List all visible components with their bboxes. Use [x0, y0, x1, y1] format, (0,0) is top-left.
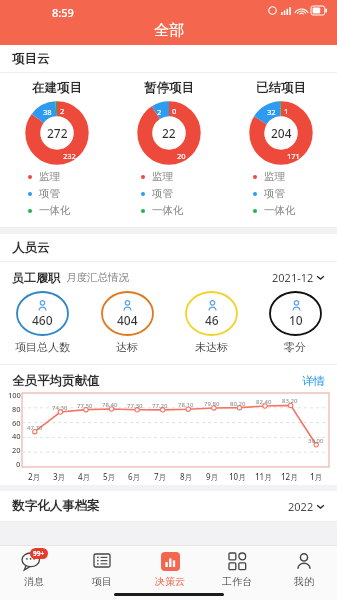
staticText: 20	[12, 445, 21, 455]
staticText: 10月	[229, 471, 247, 482]
button[interactable]: 数字化人事档案	[12, 491, 325, 521]
staticText: 项管	[39, 187, 60, 200]
button[interactable]: 46	[169, 291, 253, 354]
staticText: 40	[12, 431, 21, 441]
staticText: 项目	[92, 575, 112, 588]
staticText: 消息	[24, 575, 44, 588]
staticText: 171	[287, 151, 300, 161]
staticText: 项管	[152, 187, 173, 200]
staticText: 1	[284, 106, 289, 116]
staticText: 2021-12	[272, 270, 314, 285]
button[interactable]: 工作台	[203, 549, 270, 588]
staticText: 2022	[288, 499, 314, 514]
staticText: 38	[43, 107, 52, 117]
staticText: 零分	[284, 340, 306, 354]
button[interactable]: 我的	[270, 549, 337, 588]
staticText: 99+	[33, 549, 45, 558]
staticText: 77.30	[127, 402, 143, 410]
staticText: 46	[205, 312, 219, 328]
staticText: 项目云	[12, 51, 50, 67]
button[interactable]: 消息	[0, 549, 68, 588]
staticText: 4月	[78, 471, 91, 482]
staticText: 8月	[180, 471, 193, 482]
staticText: 0	[16, 459, 21, 469]
staticText: 未达标	[195, 340, 228, 354]
staticText: 60	[12, 418, 21, 428]
staticText: 2	[157, 107, 162, 117]
staticText: 47.70	[27, 424, 43, 432]
button[interactable]: 2021-12	[272, 270, 325, 285]
staticText: 10	[289, 312, 303, 328]
staticText: 全部	[154, 21, 184, 40]
staticText: 2	[60, 106, 65, 116]
staticText: 一体化	[39, 204, 71, 217]
staticText: 80	[12, 404, 21, 414]
staticText: 32	[267, 107, 276, 117]
staticText: 3月	[53, 471, 66, 482]
staticText: 74.30	[52, 404, 68, 412]
staticText: 达标	[116, 340, 138, 354]
staticText: 监理	[39, 170, 60, 183]
staticText: 5月	[103, 471, 116, 482]
staticText: 2月	[28, 471, 41, 482]
staticText: 监理	[264, 170, 285, 183]
staticText: 9月	[206, 471, 219, 482]
staticText: 78.10	[178, 401, 194, 409]
staticText: 204	[271, 125, 292, 141]
staticText: 决策云	[155, 575, 185, 588]
staticText: 79.80	[204, 400, 220, 408]
staticText: 77.50	[77, 402, 93, 410]
button[interactable]: 项目	[68, 549, 136, 588]
button[interactable]: 460	[0, 291, 85, 354]
button[interactable]: 10	[253, 291, 337, 354]
staticText: 78.40	[102, 401, 118, 409]
staticText: 6月	[128, 471, 141, 482]
staticText: 12月	[281, 471, 299, 482]
staticText: 8:59	[52, 5, 74, 20]
staticText: 人员云	[12, 240, 50, 256]
staticText: 83.20	[282, 397, 298, 405]
staticText: 1月	[310, 471, 323, 482]
staticText: 月度汇总情况	[66, 271, 129, 284]
button[interactable]: 决策云	[136, 549, 203, 588]
staticText: 232	[63, 151, 76, 161]
staticText: 项目总人数	[15, 340, 70, 354]
staticText: 在建项目	[32, 80, 82, 96]
staticText: 一体化	[264, 204, 296, 217]
staticText: 工作台	[222, 575, 252, 588]
staticText: 460	[32, 312, 53, 328]
staticText: 77.20	[152, 402, 168, 410]
button[interactable]: 详情	[302, 374, 325, 388]
staticText: 11月	[255, 471, 273, 482]
staticText: 暂停项目	[144, 80, 194, 96]
staticText: 100	[8, 390, 21, 400]
staticText: 30.00	[308, 437, 324, 445]
staticText: 20	[177, 151, 186, 161]
staticText: 22	[162, 125, 176, 141]
staticText: 已结项目	[256, 80, 306, 96]
staticText: 272	[47, 125, 68, 141]
staticText: 0	[172, 106, 177, 116]
staticText: 82.40	[256, 398, 272, 406]
staticText: 监理	[152, 170, 173, 183]
staticText: 7月	[154, 471, 167, 482]
staticText: 我的	[294, 575, 314, 588]
staticText: 项管	[264, 187, 285, 200]
staticText: 404	[117, 312, 138, 328]
staticText: 一体化	[152, 204, 184, 217]
button[interactable]: 404	[85, 291, 169, 354]
staticText: 员工履职	[12, 270, 60, 285]
staticText: 全员平均贡献值	[12, 373, 100, 389]
staticText: 数字化人事档案	[12, 498, 100, 514]
staticText: 80.20	[230, 400, 246, 408]
staticText: 详情	[302, 374, 325, 388]
